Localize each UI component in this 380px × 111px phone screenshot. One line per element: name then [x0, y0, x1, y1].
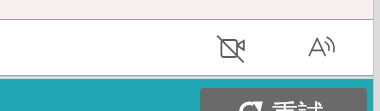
- button[interactable]: Read aloud: [304, 32, 342, 70]
- button[interactable]: Turn off video: [212, 29, 248, 65]
- button[interactable]: 重試: [200, 88, 367, 111]
- staticText: 重試: [272, 98, 324, 111]
